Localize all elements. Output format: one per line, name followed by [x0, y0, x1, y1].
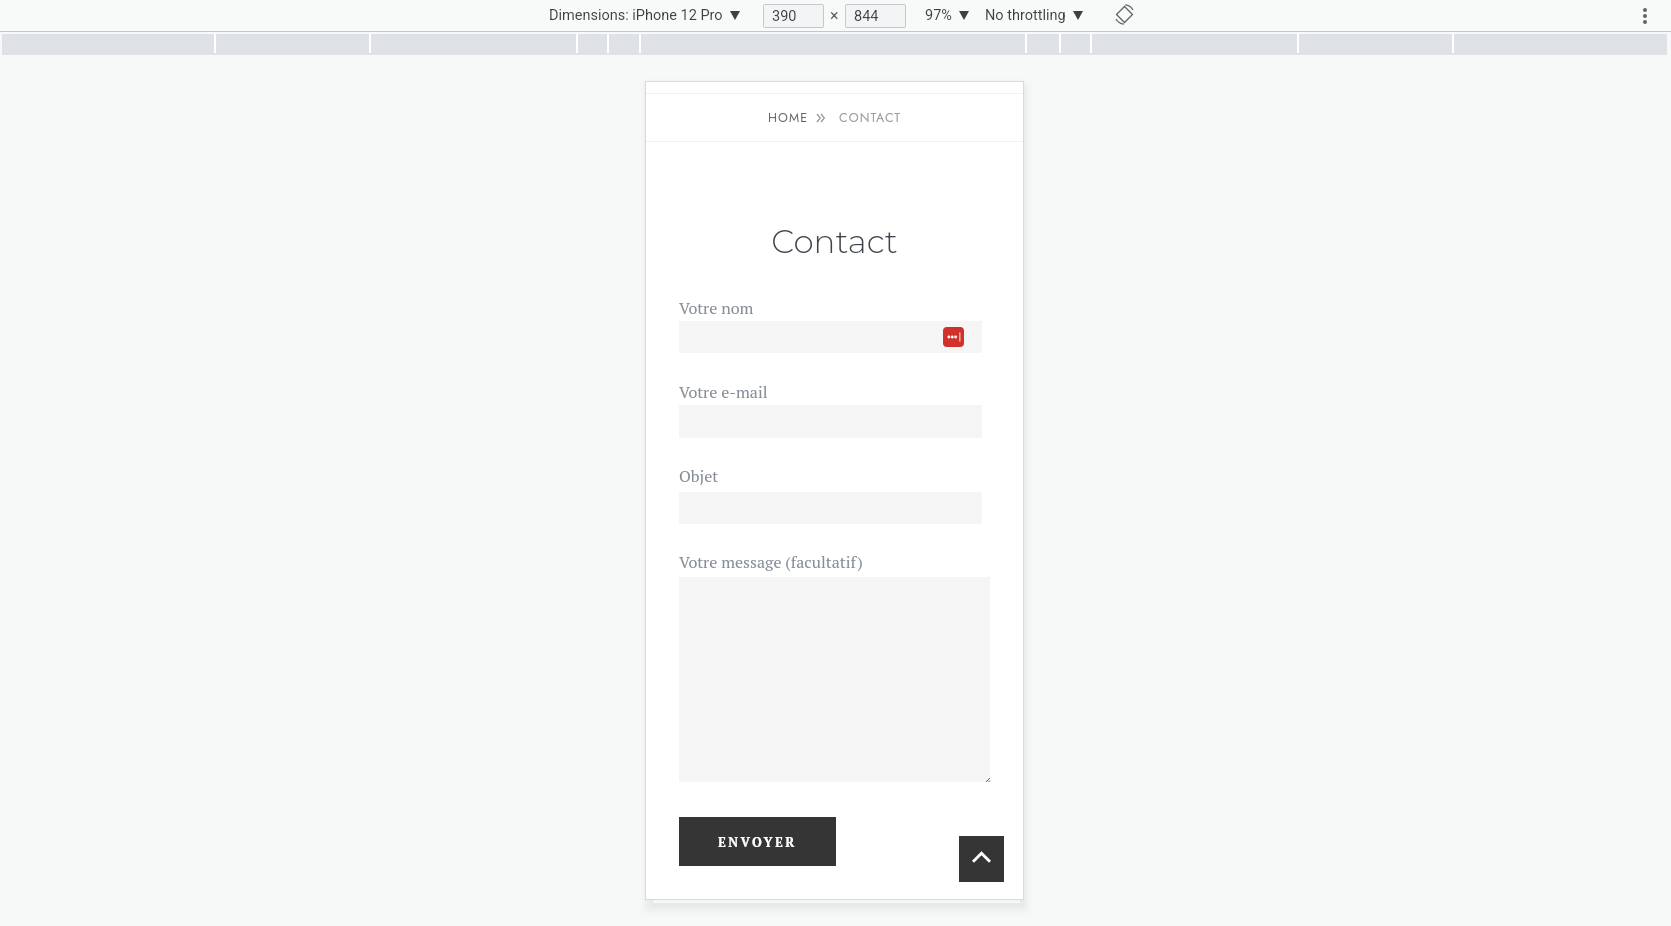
button[interactable]: More options [1636, 7, 1654, 25]
staticText: Contact [771, 222, 898, 262]
button[interactable]: No throttling [985, 7, 1083, 24]
button[interactable]: 844 [845, 4, 906, 28]
button[interactable]: 390 [763, 4, 824, 28]
staticText: ENVOYER [718, 833, 797, 850]
button[interactable]: Dimensions: iPhone 12 Pro [549, 7, 740, 24]
staticText: Votre e-mail [679, 381, 768, 402]
button[interactable]: Autofill [943, 327, 964, 347]
staticText: CONTACT [839, 109, 902, 127]
button[interactable]: 97% [925, 7, 969, 24]
button[interactable]: HOME [768, 109, 809, 127]
staticText: No throttling [985, 7, 1066, 24]
staticText: 390 [772, 8, 797, 25]
button[interactable]: Autofill [679, 321, 982, 353]
button[interactable]: ENVOYER [679, 817, 836, 866]
staticText: Objet [679, 465, 719, 486]
staticText: 97% [925, 7, 952, 24]
staticText: Votre nom [679, 297, 754, 318]
button[interactable]: Back to top [959, 836, 1004, 882]
button[interactable]: Rotate screen [1111, 3, 1137, 29]
staticText: 844 [854, 8, 879, 25]
staticText: Dimensions: iPhone 12 Pro [549, 7, 723, 24]
staticText: × [830, 6, 839, 25]
staticText: Votre message (facultatif) [679, 551, 863, 572]
